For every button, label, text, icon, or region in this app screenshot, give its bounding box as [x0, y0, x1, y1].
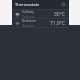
- staticText: Thermostats: [15, 2, 40, 7]
- button[interactable]: Thermostats: [12, 0, 69, 9]
- button[interactable]: Bedroom: [12, 19, 69, 27]
- staticText: Heating to: [22, 24, 35, 27]
- staticText: Bedroom: [22, 19, 37, 23]
- staticText: Cooling to: [22, 15, 35, 18]
- staticText: Hallway: [22, 10, 35, 14]
- staticText: 30°C: [54, 11, 66, 18]
- button[interactable]: Hallway: [12, 10, 69, 18]
- button[interactable]: More options: [61, 2, 66, 7]
- staticText: 71.9°C: [50, 20, 66, 27]
